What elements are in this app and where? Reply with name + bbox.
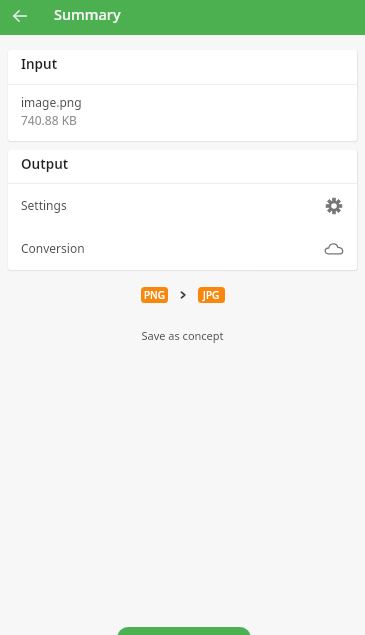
staticText: Settings [21,197,67,213]
staticText: Input [21,55,58,73]
button[interactable]: PNG [141,287,168,303]
staticText: Save as concept [0,328,365,343]
button[interactable]: Conversion [8,227,357,270]
staticText: Conversion [21,240,85,256]
button[interactable]: Convert [117,627,251,635]
staticText: PNG [144,288,166,302]
button[interactable]: Back [4,0,36,32]
button[interactable]: Settings [8,184,357,227]
staticText: 740.88 KB [21,112,77,128]
button[interactable]: JPG [198,287,225,303]
staticText: Summary [54,4,121,24]
staticText: image.png [21,94,82,110]
staticText: JPG [203,288,220,302]
staticText: Output [21,155,69,173]
